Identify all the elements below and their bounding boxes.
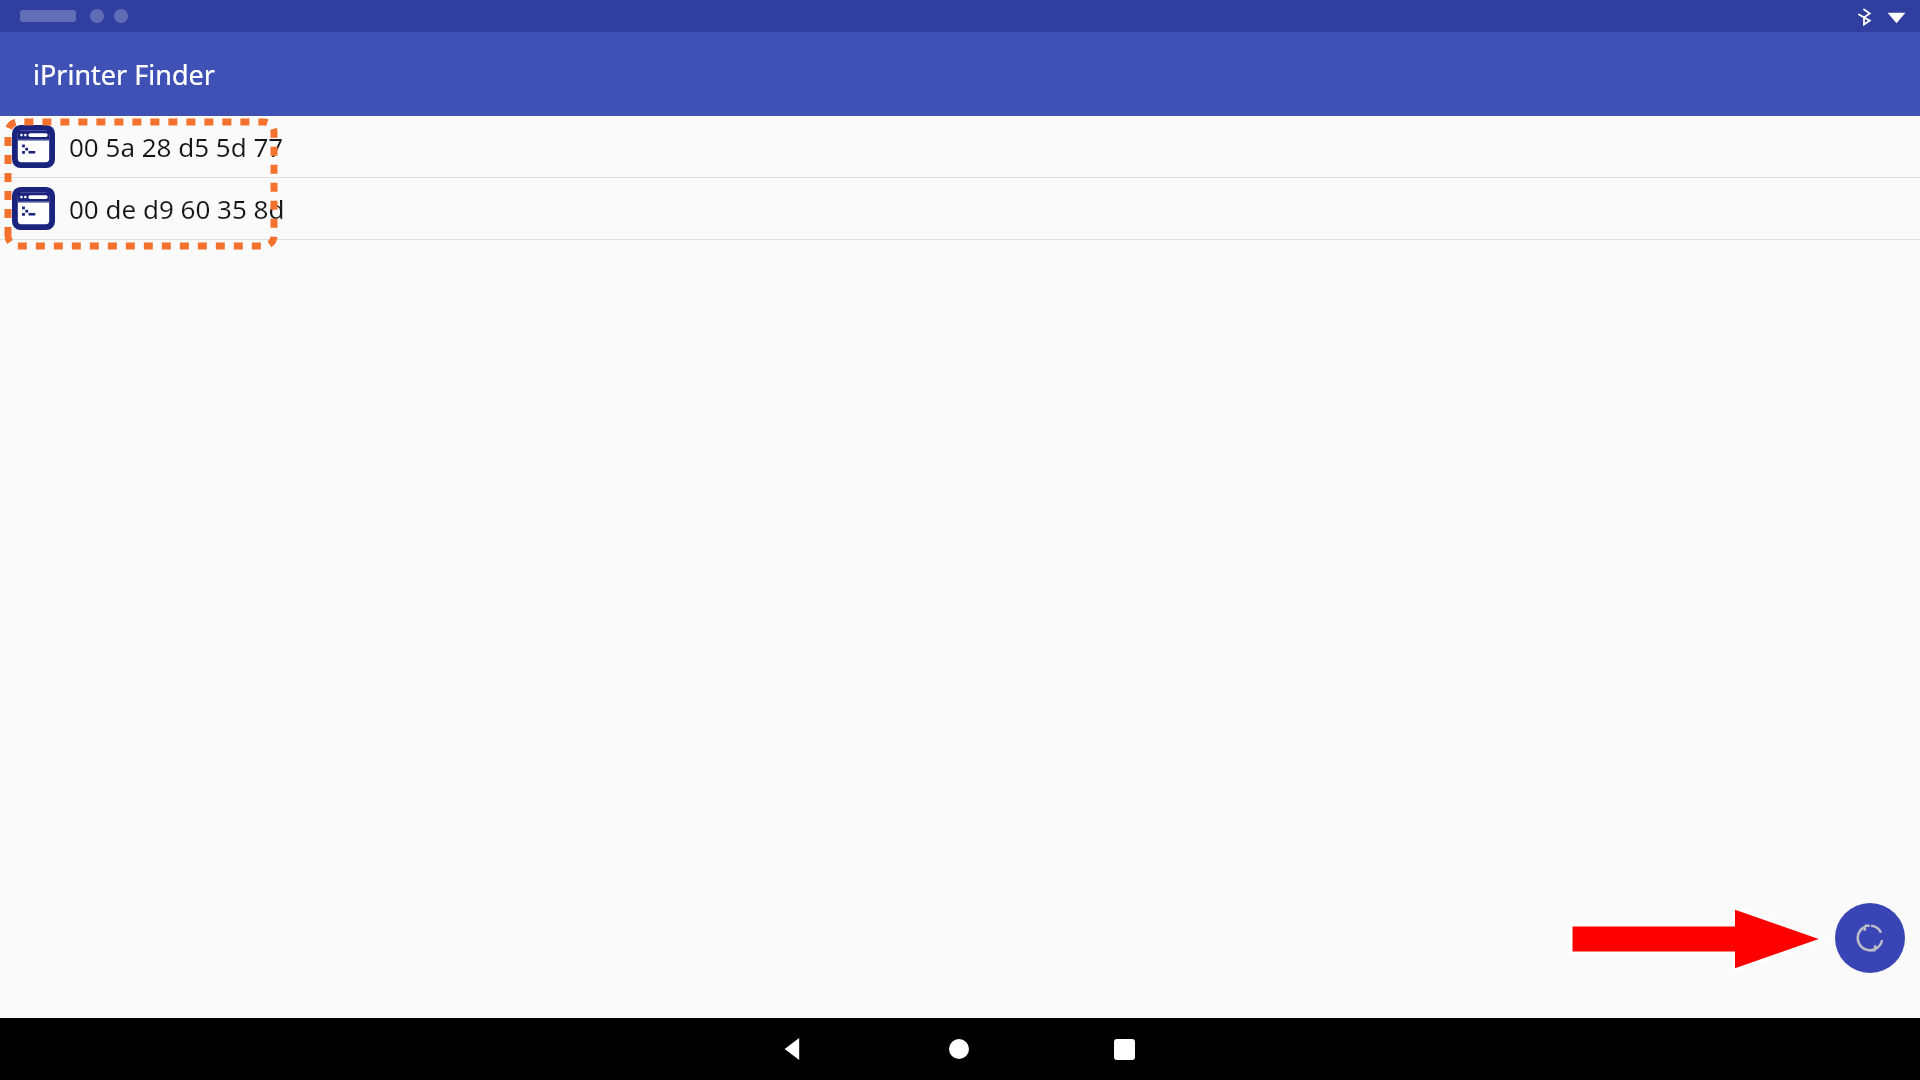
staticText: 00 de d9 60 35 8d	[69, 191, 285, 226]
button[interactable]: Home	[929, 1019, 989, 1079]
button[interactable]: 00 5a 28 d5 5d 77	[0, 116, 1920, 177]
button[interactable]: 00 de d9 60 35 8d	[0, 178, 1920, 239]
button[interactable]: Back	[763, 1019, 823, 1079]
staticText: 00 5a 28 d5 5d 77	[69, 129, 284, 164]
staticText: iPrinter Finder	[33, 56, 215, 93]
button[interactable]: Refresh	[1835, 903, 1905, 973]
button[interactable]: Recent apps	[1094, 1019, 1154, 1079]
